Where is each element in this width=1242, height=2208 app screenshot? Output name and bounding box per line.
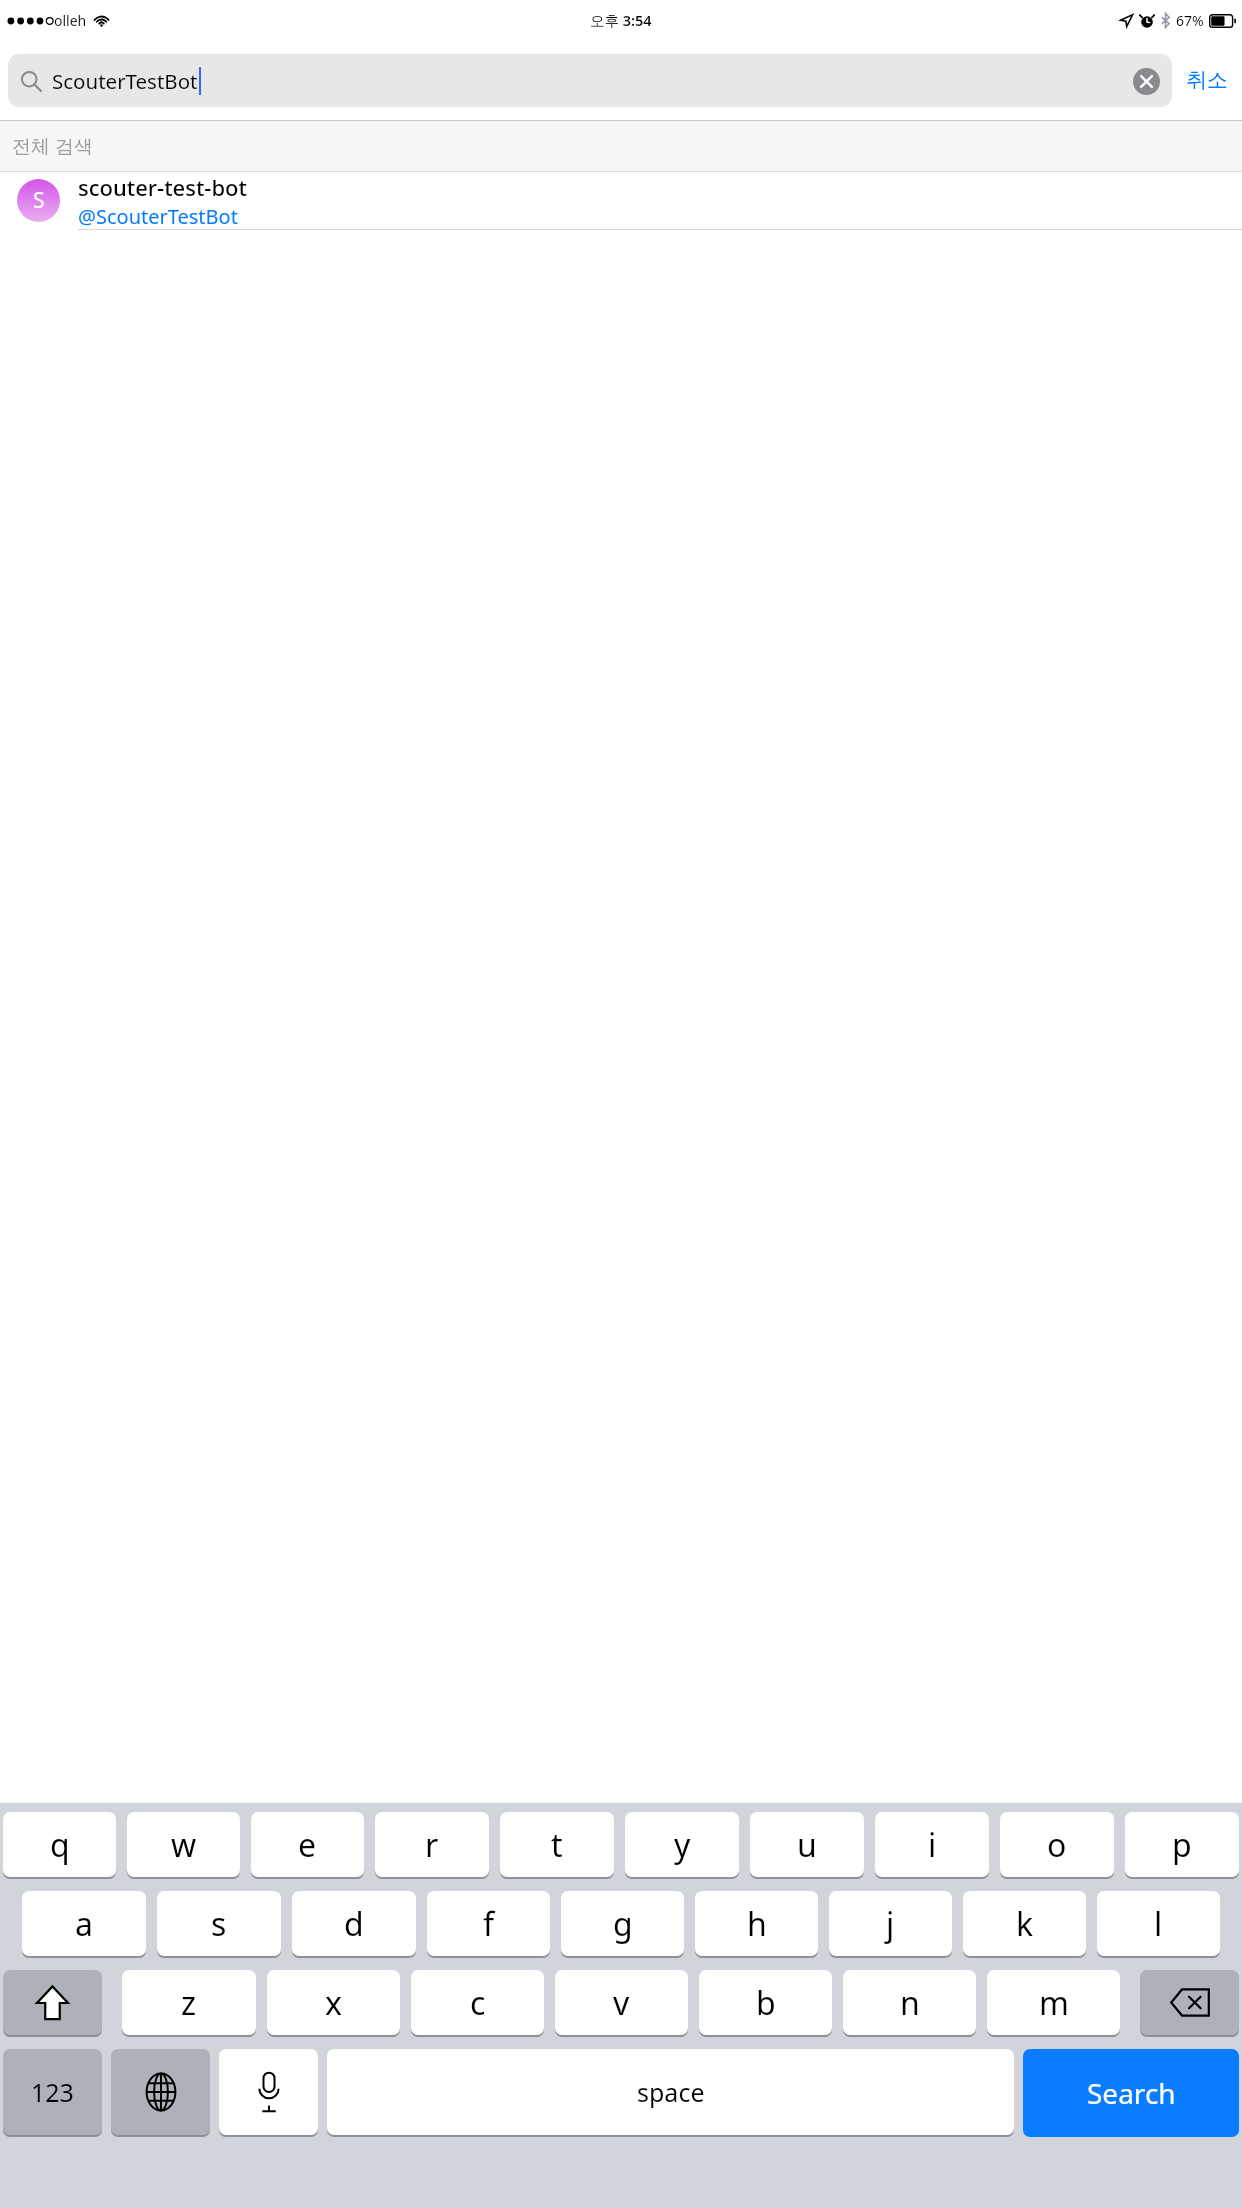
button[interactable]: j [829, 1891, 952, 1956]
button[interactable]: u [750, 1812, 864, 1877]
staticText: olleh [54, 11, 87, 30]
staticText: p [1172, 1823, 1192, 1867]
button[interactable]: 123 [3, 2049, 102, 2135]
button[interactable]: z [122, 1970, 256, 2035]
button[interactable]: b [699, 1970, 832, 2035]
button[interactable]: e [251, 1812, 364, 1877]
staticText: f [483, 1902, 495, 1946]
button[interactable]: Shift [3, 1970, 102, 2035]
staticText: 123 [31, 2075, 74, 2109]
button[interactable]: c [411, 1970, 544, 2035]
staticText: k [1016, 1902, 1034, 1946]
staticText: a [75, 1902, 93, 1946]
button[interactable]: m [987, 1970, 1120, 2035]
button[interactable]: o [1000, 1812, 1114, 1877]
button[interactable]: Search [1023, 2049, 1239, 2137]
staticText: 전체 검색 [12, 133, 93, 159]
button[interactable]: w [127, 1812, 240, 1877]
button[interactable]: 취소 [1172, 40, 1242, 120]
button[interactable]: ScouterTestBot [8, 54, 1172, 107]
button[interactable]: y [625, 1812, 739, 1877]
button[interactable]: v [555, 1970, 688, 2035]
button[interactable]: g [561, 1891, 684, 1956]
button[interactable]: l [1097, 1891, 1220, 1956]
staticText: m [1039, 1981, 1069, 2025]
staticText: i [928, 1823, 937, 1867]
staticText: y [674, 1823, 691, 1867]
staticText: o [1047, 1823, 1067, 1867]
button[interactable]: s [157, 1891, 281, 1956]
staticText: q [50, 1823, 70, 1867]
button[interactable]: d [292, 1891, 416, 1956]
button[interactable]: i [875, 1812, 989, 1877]
staticText: r [425, 1823, 439, 1867]
staticText: scouter-test-bot [78, 172, 247, 202]
staticText: j [886, 1902, 895, 1946]
staticText: h [747, 1902, 767, 1946]
button[interactable]: p [1125, 1812, 1239, 1877]
staticText: z [181, 1981, 197, 2025]
button[interactable]: Dictate [219, 2049, 318, 2135]
staticText: v [613, 1981, 630, 2025]
button[interactable]: a [22, 1891, 146, 1956]
staticText: space [637, 2075, 705, 2109]
staticText: s [211, 1902, 227, 1946]
button[interactable]: h [695, 1891, 818, 1956]
staticText: 취소 [1186, 67, 1228, 93]
staticText: w [171, 1823, 197, 1867]
staticText: d [344, 1902, 364, 1946]
button[interactable]: S [0, 172, 1242, 230]
button[interactable]: f [427, 1891, 550, 1956]
staticText: c [470, 1981, 486, 2025]
staticText: x [325, 1981, 342, 2025]
button[interactable]: Clear text [1120, 55, 1172, 107]
staticText: e [298, 1823, 317, 1867]
staticText: b [756, 1981, 776, 2025]
staticText: @ScouterTestBot [78, 203, 238, 229]
button[interactable]: r [375, 1812, 489, 1877]
button[interactable]: Backspace [1140, 1970, 1239, 2035]
button[interactable]: k [963, 1891, 1086, 1956]
button[interactable]: n [843, 1970, 976, 2035]
staticText: g [613, 1902, 633, 1946]
staticText: 오후 3:54 [590, 10, 652, 30]
staticText: 67% [1176, 11, 1204, 30]
button[interactable]: Next keyboard [111, 2049, 210, 2135]
button[interactable]: q [3, 1812, 116, 1877]
staticText: Search [1087, 2074, 1176, 2112]
staticText: u [797, 1823, 817, 1867]
staticText: S [33, 186, 45, 215]
staticText: l [1154, 1902, 1163, 1946]
button[interactable]: t [500, 1812, 614, 1877]
button[interactable]: space [327, 2049, 1014, 2135]
staticText: n [900, 1981, 920, 2025]
staticText: ScouterTestBot [52, 67, 198, 95]
button[interactable]: x [267, 1970, 400, 2035]
staticText: t [551, 1823, 563, 1867]
